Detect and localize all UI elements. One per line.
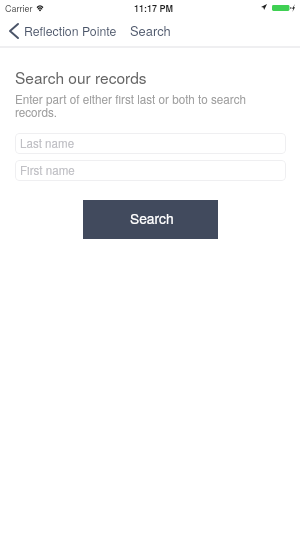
button[interactable]: Search	[83, 200, 218, 239]
other: Charging	[292, 4, 295, 12]
staticText: 11:17 PM	[134, 2, 174, 15]
other: Wi-Fi signal	[36, 4, 44, 11]
button[interactable]: Last name	[15, 133, 286, 154]
other: Battery full	[272, 5, 291, 11]
staticText: Last name	[20, 135, 75, 152]
staticText: Enter part of either first last or both …	[15, 91, 247, 120]
staticText: Search	[130, 208, 174, 228]
button[interactable]: Search	[130, 21, 171, 39]
button[interactable]: Reflection Pointe	[6, 20, 117, 42]
button[interactable]: First name	[15, 160, 286, 181]
staticText: Reflection Pointe	[24, 22, 117, 40]
staticText: First name	[20, 162, 75, 179]
staticText: Carrier	[5, 2, 33, 15]
staticText: Search our records	[15, 66, 147, 88]
other: Location services active	[261, 4, 267, 10]
